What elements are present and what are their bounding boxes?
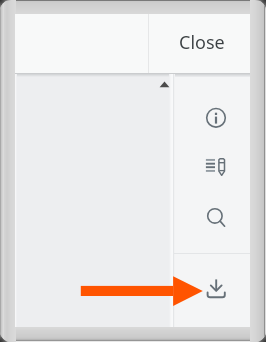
staticText: Close: [179, 30, 225, 55]
button[interactable]: Download: [199, 272, 233, 306]
button[interactable]: Notes and annotations: [198, 148, 232, 182]
button[interactable]: Close: [149, 14, 250, 73]
button[interactable]: Search: [199, 199, 233, 233]
button[interactable]: Info: [199, 101, 233, 135]
